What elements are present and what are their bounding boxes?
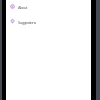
staticText: Suggestions [18,20,36,25]
button[interactable]: About [6,0,91,15]
staticText: About [18,5,27,10]
button[interactable]: Suggestions [6,15,91,30]
